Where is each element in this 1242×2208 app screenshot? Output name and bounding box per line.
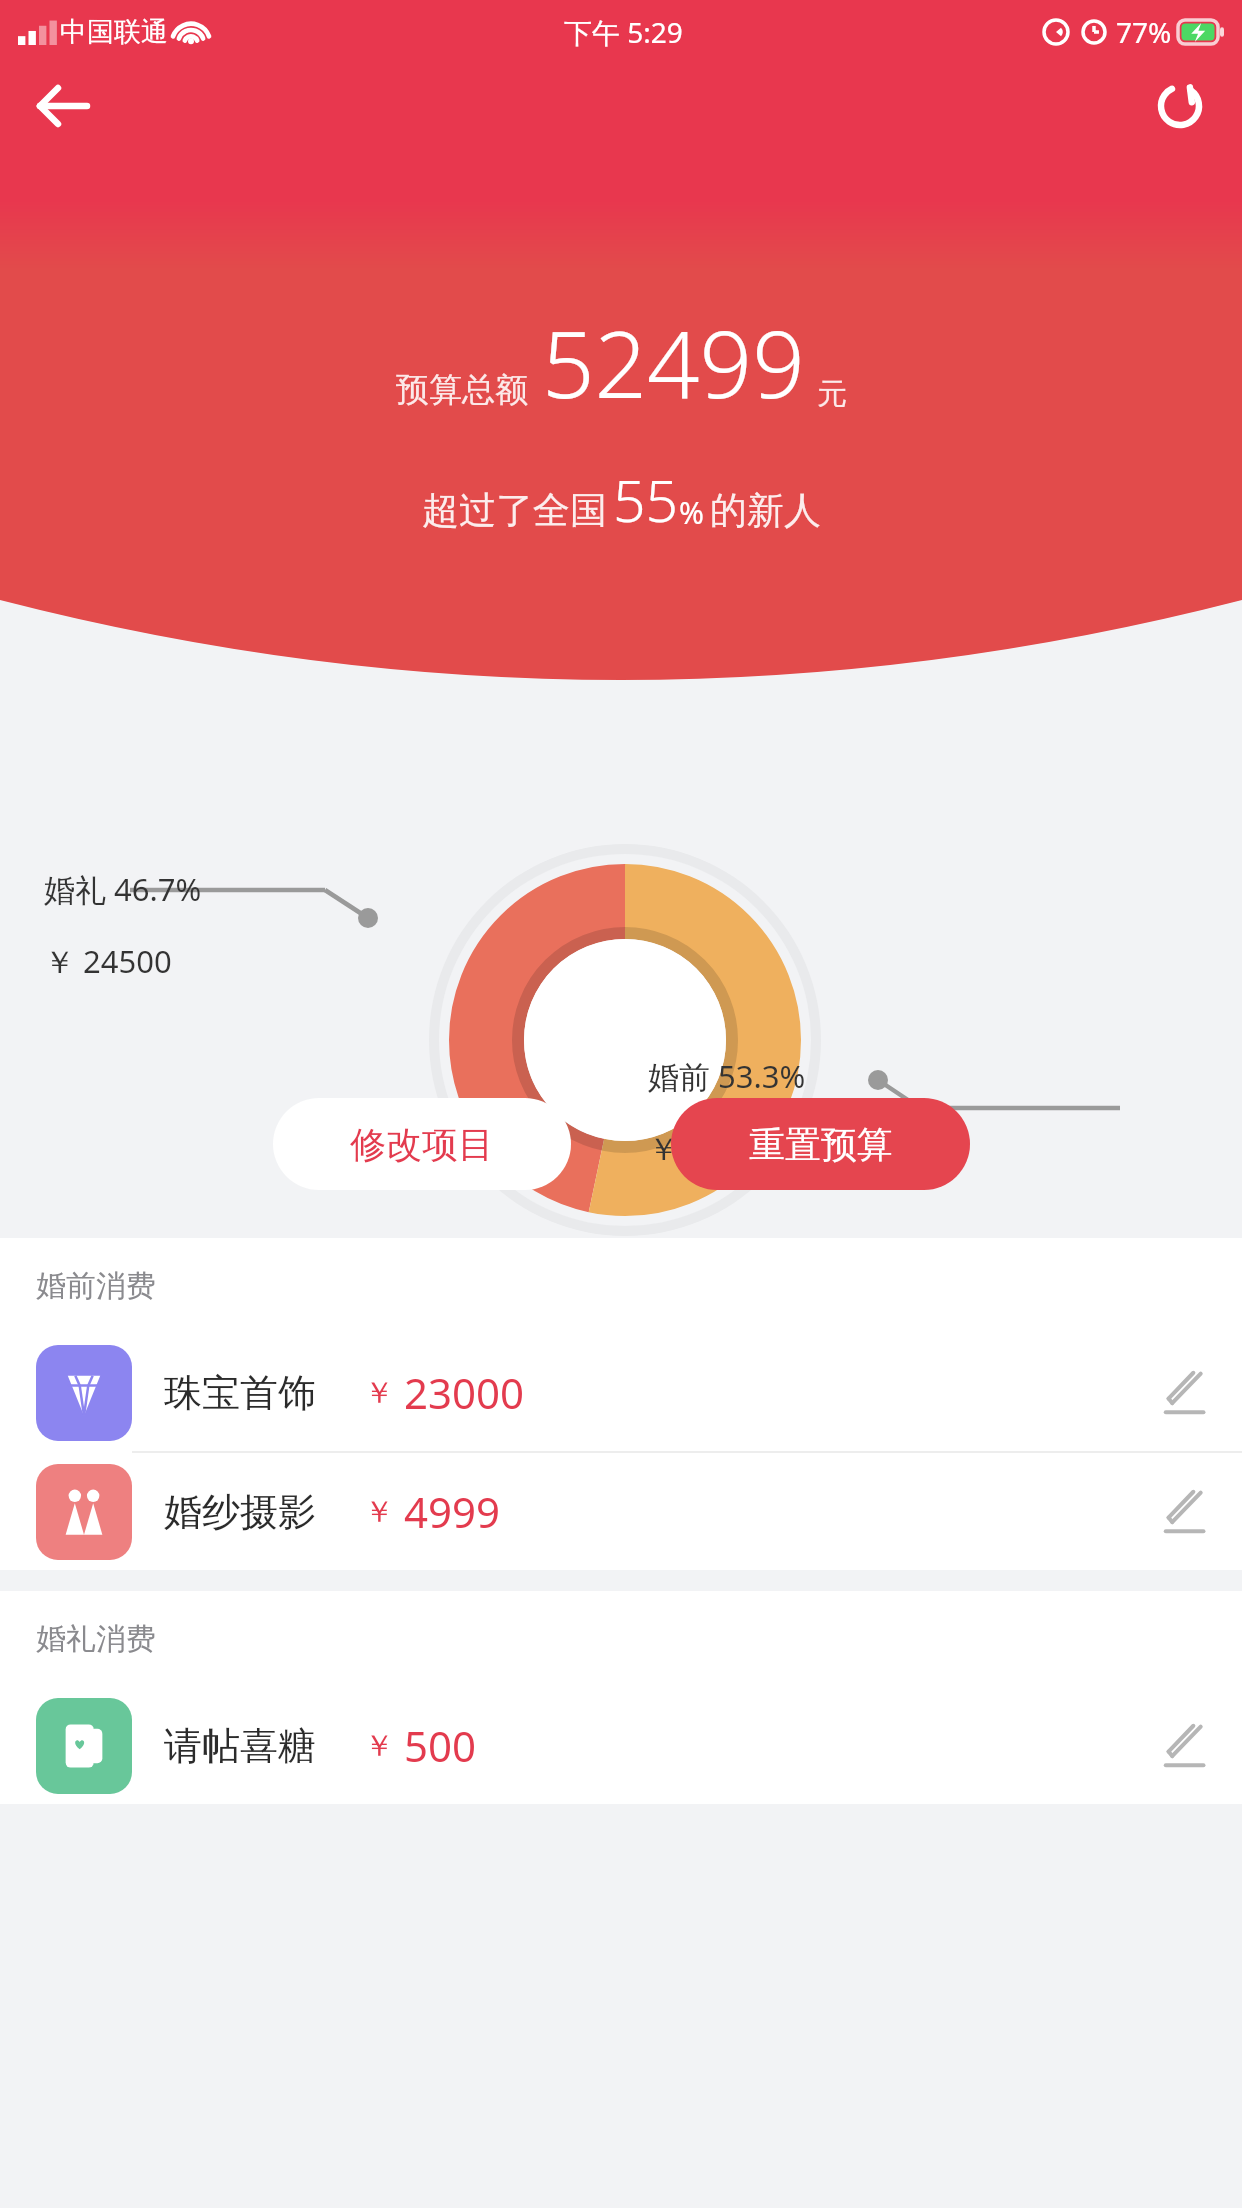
staticText: 婚纱摄影	[164, 1488, 316, 1536]
staticText: ￥	[364, 1493, 394, 1531]
staticText: ￥ 24500	[44, 940, 172, 982]
staticText: 52499	[542, 300, 805, 425]
button[interactable]: Edit 请帖喜糖	[1140, 1700, 1232, 1792]
staticText: ￥ 27999	[648, 1127, 776, 1169]
staticText: 元	[817, 375, 847, 413]
staticText: 下午 5:29	[564, 13, 683, 51]
staticText: 77%	[1116, 13, 1172, 51]
staticText: %	[679, 492, 704, 533]
staticText: 婚前消费	[36, 1267, 156, 1305]
staticText: 婚前 53.3%	[648, 1055, 806, 1097]
staticText: ￥	[364, 1727, 394, 1765]
staticText: 婚礼消费	[36, 1620, 156, 1658]
staticText: 500	[404, 1717, 477, 1774]
staticText: 修改项目	[350, 1122, 494, 1167]
staticText: 55	[613, 461, 679, 539]
staticText: 重置预算	[749, 1122, 893, 1167]
button[interactable]: 珠宝首饰	[0, 1334, 1242, 1451]
button[interactable]: Edit 珠宝首饰	[1140, 1347, 1232, 1439]
staticText: 婚礼 46.7%	[44, 868, 202, 910]
staticText: 的新人	[710, 487, 821, 534]
staticText: 请帖喜糖	[164, 1722, 316, 1770]
button[interactable]: 修改项目	[273, 1098, 571, 1190]
staticText: 23000	[404, 1364, 525, 1421]
staticText: 珠宝首饰	[164, 1369, 316, 1417]
button[interactable]: 重置预算	[671, 1098, 970, 1190]
button[interactable]: Back	[18, 62, 106, 150]
button[interactable]: 婚纱摄影	[0, 1453, 1242, 1570]
button[interactable]: 请帖喜糖	[0, 1687, 1242, 1804]
staticText: 中国联通	[60, 15, 168, 49]
button[interactable]: Edit 婚纱摄影	[1140, 1466, 1232, 1558]
staticText: 超过了全国	[422, 487, 607, 534]
staticText: 预算总额	[396, 369, 528, 411]
staticText: ￥	[364, 1374, 394, 1412]
button[interactable]: Share	[1136, 62, 1224, 150]
staticText: 4999	[404, 1483, 501, 1540]
